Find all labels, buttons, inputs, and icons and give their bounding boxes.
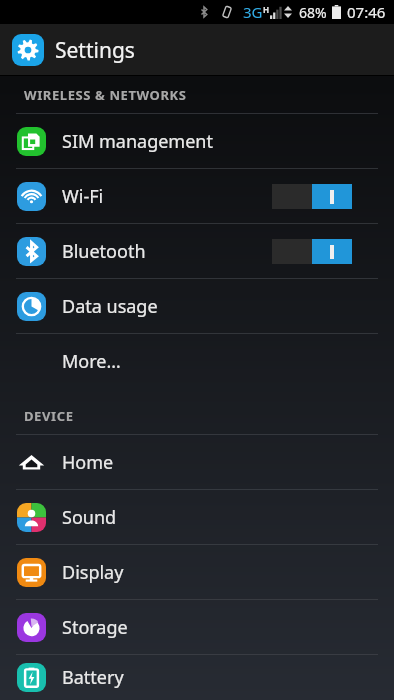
staticText: 07:46	[347, 2, 386, 22]
button[interactable]: Storage	[0, 600, 394, 654]
staticText: WIRELESS & NETWORKS	[24, 86, 187, 104]
button[interactable]: Bluetooth toggle	[272, 239, 352, 264]
staticText: Storage	[62, 615, 128, 640]
button[interactable]: Display	[0, 545, 394, 599]
button[interactable]: Bluetooth	[0, 224, 394, 278]
staticText: Data usage	[62, 294, 158, 319]
staticText: Home	[62, 450, 114, 475]
button[interactable]: Battery	[0, 655, 394, 700]
staticText: DEVICE	[24, 407, 74, 425]
staticText: Wi-Fi	[62, 184, 104, 209]
staticText: Bluetooth	[62, 239, 146, 264]
button[interactable]: Data usage	[0, 279, 394, 333]
staticText: Display	[62, 560, 124, 585]
button[interactable]: SIM management	[0, 114, 394, 168]
button[interactable]: Wi-Fi	[0, 169, 394, 223]
button[interactable]: More…	[0, 334, 394, 388]
staticText: Sound	[62, 505, 117, 530]
staticText: SIM management	[62, 129, 213, 154]
staticText: 3G	[243, 2, 263, 22]
staticText: Battery	[62, 665, 124, 690]
button[interactable]: Home	[0, 435, 394, 489]
button[interactable]: Sound	[0, 490, 394, 544]
staticText: More…	[62, 349, 121, 374]
staticText: Settings	[55, 36, 135, 65]
staticText: H	[263, 4, 270, 15]
button[interactable]: Wi-Fi toggle	[272, 184, 352, 209]
staticText: 68%	[299, 3, 327, 22]
